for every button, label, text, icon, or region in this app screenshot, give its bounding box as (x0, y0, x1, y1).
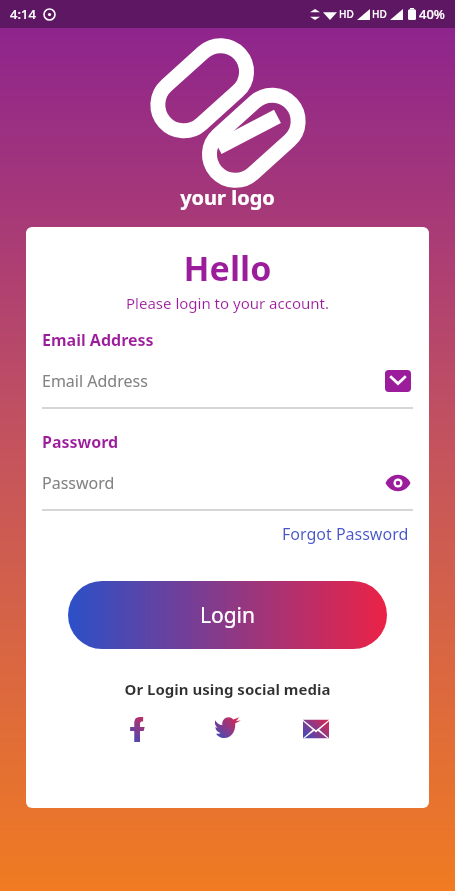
staticText: Please login to your account. (42, 293, 413, 313)
staticText: your logo (0, 184, 455, 211)
button[interactable]: Forgot Password (278, 519, 413, 549)
button[interactable]: Login with Facebook (118, 707, 162, 751)
button[interactable]: Email Address (42, 365, 413, 397)
staticText: HD (339, 7, 354, 21)
button[interactable]: Email (383, 366, 413, 396)
staticText: Email Address (42, 329, 154, 351)
staticText: Hello (42, 245, 413, 291)
staticText: Email Address (42, 370, 383, 392)
staticText: 40% (419, 5, 445, 23)
button[interactable]: Login with Twitter (206, 707, 250, 751)
button[interactable]: Login with Email (294, 707, 338, 751)
staticText: Forgot Password (282, 523, 409, 545)
staticText: 4:14 (10, 5, 36, 23)
staticText: Or Login using social media (42, 679, 413, 699)
staticText: Password (42, 472, 383, 494)
staticText: Login (200, 601, 256, 630)
button[interactable]: Password (42, 467, 413, 499)
button[interactable]: Login (68, 581, 387, 649)
staticText: HD (372, 7, 387, 21)
staticText: Password (42, 431, 119, 453)
button[interactable]: Show password (383, 468, 413, 498)
